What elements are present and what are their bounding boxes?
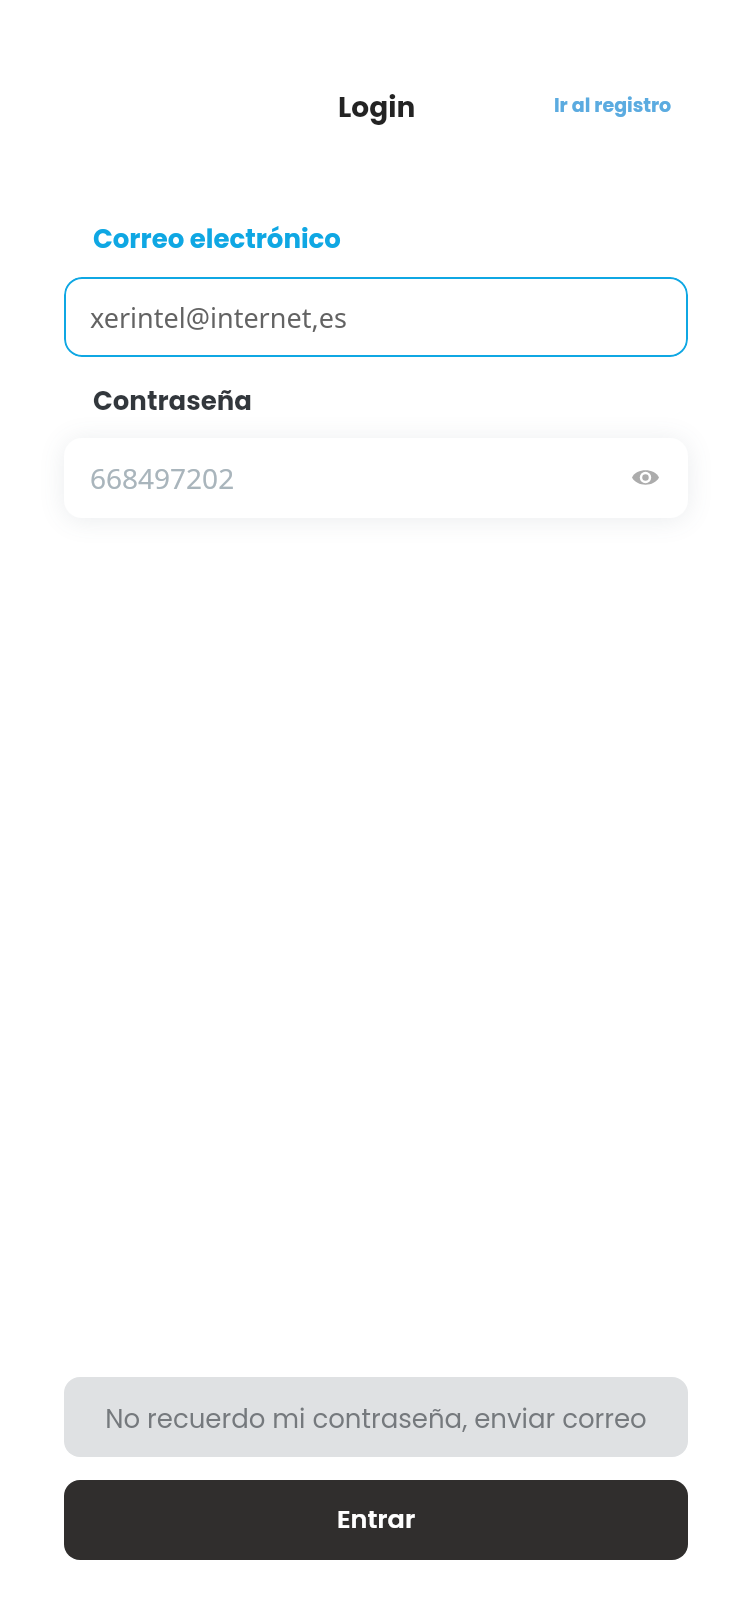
button[interactable]: xerintel@internet,es — [64, 277, 688, 357]
button[interactable]: Mostrar contraseña — [624, 456, 666, 498]
button[interactable]: No recuerdo mi contraseña, enviar correo — [64, 1377, 688, 1457]
staticText: Entrar — [337, 1501, 416, 1537]
button[interactable]: 668497202 — [64, 438, 688, 518]
staticText: No recuerdo mi contraseña, enviar correo — [105, 1401, 647, 1437]
staticText: xerintel@internet,es — [90, 299, 347, 336]
button[interactable]: Entrar — [64, 1480, 688, 1560]
staticText: Login — [338, 88, 416, 127]
staticText: Contraseña — [93, 383, 252, 419]
staticText: Correo electrónico — [93, 221, 341, 257]
staticText: Ir al registro — [554, 92, 672, 119]
staticText: 668497202 — [90, 459, 235, 497]
button[interactable]: Ir al registro — [539, 82, 687, 129]
